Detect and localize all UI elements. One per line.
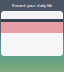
staticText: Record your daily life xyxy=(12,3,52,8)
